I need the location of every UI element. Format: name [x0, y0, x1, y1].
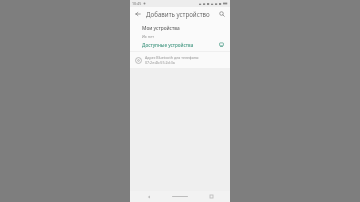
staticText: Адрес Bluetooth для телефона: 07:2e:4b:5…: [145, 55, 225, 65]
staticText: 10:45: [132, 1, 142, 6]
button[interactable]: Главный экран: [168, 191, 192, 202]
staticText: Мои устройства: [142, 25, 180, 32]
button[interactable]: Поиск: [217, 9, 227, 19]
staticText: Доступные устройства: [142, 42, 217, 48]
button[interactable]: Назад: [133, 9, 143, 19]
staticText: Их нет: [142, 34, 154, 38]
other: Обновить: [217, 40, 226, 49]
button[interactable]: Доступные устройства: [130, 38, 230, 51]
other: Справка: [133, 55, 143, 65]
button[interactable]: Справка: [130, 52, 230, 68]
button[interactable]: Назад: [142, 191, 156, 202]
staticText: Добавить устройство: [146, 10, 217, 18]
button[interactable]: Обзор: [204, 191, 218, 202]
